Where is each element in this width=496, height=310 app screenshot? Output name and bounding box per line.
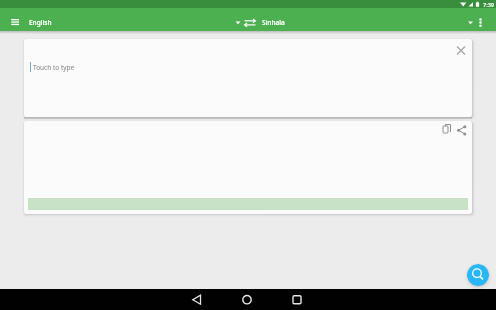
staticText: Touch to type xyxy=(33,63,75,72)
button[interactable] xyxy=(243,17,257,31)
button[interactable] xyxy=(187,289,207,310)
button[interactable] xyxy=(7,14,23,30)
button[interactable]: English xyxy=(29,8,241,31)
button[interactable] xyxy=(455,124,469,138)
button[interactable] xyxy=(440,124,454,138)
button[interactable] xyxy=(237,289,257,310)
staticText: English xyxy=(29,18,52,27)
button[interactable]: Sinhala xyxy=(262,8,474,31)
button[interactable] xyxy=(453,42,469,58)
staticText: Sinhala xyxy=(262,18,285,27)
staticText: 7:39 xyxy=(483,1,494,8)
button[interactable] xyxy=(467,264,489,286)
button[interactable] xyxy=(287,289,307,310)
button[interactable] xyxy=(473,12,488,27)
